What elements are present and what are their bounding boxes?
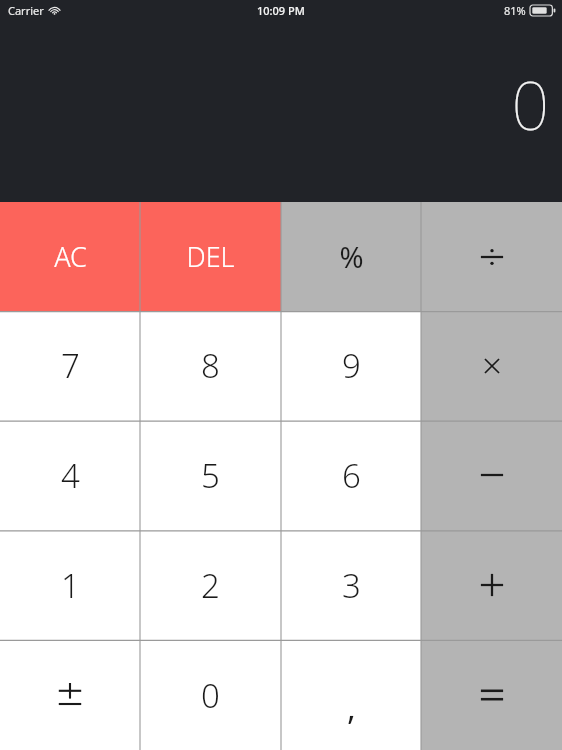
button[interactable]: All clear [0,202,140,311]
staticText: 0 [201,673,220,718]
button[interactable]: One [0,530,140,640]
button[interactable]: Decimal separator [281,640,421,750]
staticText: AC [54,238,87,275]
button[interactable]: Six [281,420,421,530]
staticText: 10:09 PM [257,3,305,18]
button[interactable]: Zero [140,640,281,750]
button[interactable]: Delete [140,202,281,311]
button[interactable]: Equals [421,640,562,750]
staticText: , [347,685,356,730]
button[interactable]: Four [0,420,140,530]
button[interactable]: Minus [421,420,562,530]
staticText: 1 [61,563,80,608]
staticText: 7 [61,343,80,388]
staticText: 8 [201,343,220,388]
button[interactable]: Five [140,420,281,530]
button[interactable]: Two [140,530,281,640]
staticText: 0 [511,59,549,149]
button[interactable]: Nine [281,311,421,420]
staticText: % [339,237,364,276]
button[interactable]: Divide [421,202,562,311]
staticText: 3 [342,563,361,608]
staticText: 4 [61,453,80,498]
staticText: 5 [201,453,220,498]
staticText: 81% [504,3,526,18]
button[interactable]: Multiply [421,311,562,420]
staticText: DEL [186,238,235,275]
staticText: Carrier [8,3,44,18]
button[interactable]: Three [281,530,421,640]
button[interactable]: Percent [281,202,421,311]
button[interactable]: Plus minus sign [0,640,140,750]
staticText: 2 [201,563,220,608]
button[interactable]: Eight [140,311,281,420]
button[interactable]: Plus [421,530,562,640]
staticText: 9 [342,343,361,388]
button[interactable]: Seven [0,311,140,420]
staticText: 6 [342,453,361,498]
